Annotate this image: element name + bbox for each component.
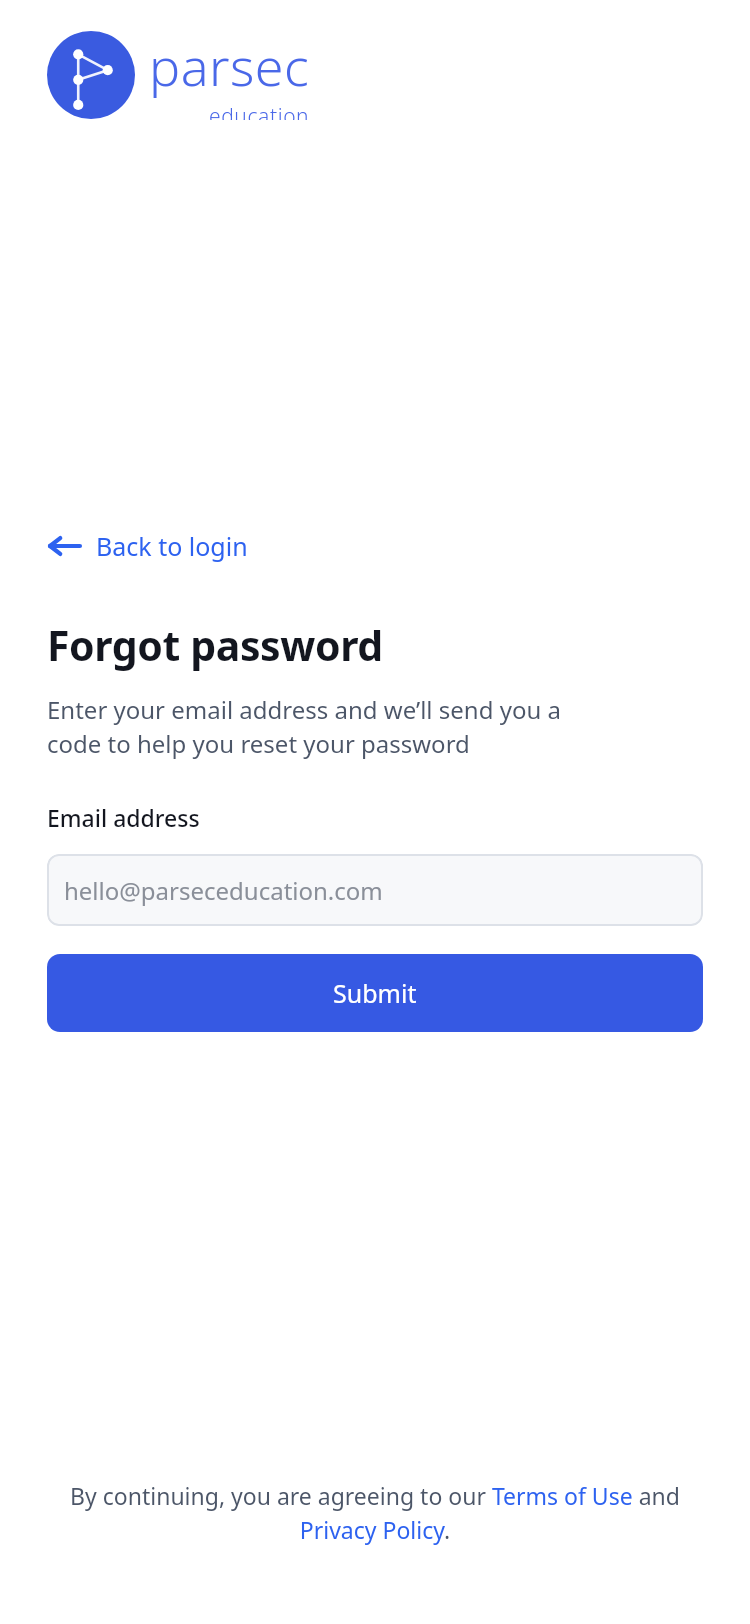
staticText: Enter your email address and we’ll send …	[47, 693, 561, 760]
staticText: Submit	[333, 976, 417, 1010]
button[interactable]: Submit	[47, 954, 703, 1032]
button[interactable]: Back to login	[34, 523, 262, 569]
staticText: parsec	[149, 30, 310, 101]
staticText: By continuing, you are agreeing to our T…	[60, 1480, 690, 1546]
staticText: Forgot password	[47, 617, 383, 673]
staticText: Email address	[47, 802, 200, 833]
button[interactable]: By continuing, you are agreeing to our T…	[60, 1480, 690, 1546]
button[interactable]: hello@parseceducation.com	[47, 854, 703, 926]
staticText: Back to login	[96, 529, 248, 563]
staticText: education	[209, 102, 310, 120]
staticText: hello@parseceducation.com	[64, 874, 383, 907]
